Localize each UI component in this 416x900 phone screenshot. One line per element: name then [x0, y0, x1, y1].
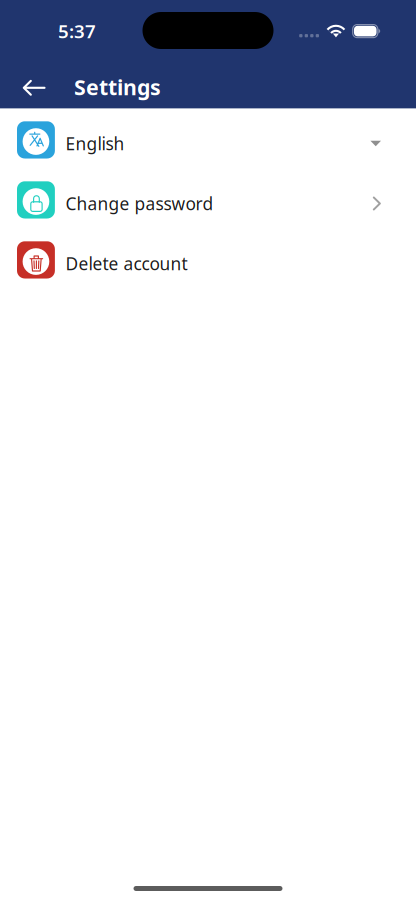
button[interactable]: Delete account — [0, 233, 416, 293]
button[interactable]: Back — [12, 66, 56, 110]
button[interactable]: Change password — [0, 173, 416, 233]
staticText: Change password — [65, 192, 213, 215]
staticText: Delete account — [65, 252, 187, 275]
button[interactable]: English — [0, 113, 416, 173]
staticText: 5:37 — [58, 19, 96, 43]
staticText: English — [65, 132, 124, 155]
staticText: Settings — [74, 73, 161, 101]
